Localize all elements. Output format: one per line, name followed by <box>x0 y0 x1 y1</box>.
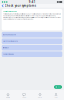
staticText: I have a headache <box>3 34 16 36</box>
button[interactable]: My throat feels sore <box>2 38 62 44</box>
staticText: You <box>54 97 57 98</box>
staticText: I feel dizzy <box>3 47 9 49</box>
button[interactable]: Care <box>32 93 48 98</box>
staticText: My throat feels sore <box>3 40 18 42</box>
staticText: Check your symptoms <box>5 4 36 7</box>
staticText: 9:41 <box>29 0 36 4</box>
button[interactable]: I feel dizzy <box>2 45 62 50</box>
button[interactable]: I have a headache <box>2 32 62 37</box>
button[interactable]: You <box>48 93 64 98</box>
button[interactable]: Home <box>0 93 16 98</box>
staticText: Symptom checker <box>3 10 17 12</box>
staticText: Chat <box>22 97 25 98</box>
staticText: Something else <box>3 53 14 55</box>
staticText: Tell me what you're feeling and I'll hel… <box>3 13 60 20</box>
button[interactable]: Something else <box>2 51 62 57</box>
staticText: Care <box>38 97 42 98</box>
button[interactable]: Ask <box>54 85 62 89</box>
button[interactable]: Chat <box>16 93 32 98</box>
staticText: Ask <box>57 86 60 88</box>
staticText: Home <box>6 97 10 98</box>
button[interactable]: Back <box>1 4 4 7</box>
